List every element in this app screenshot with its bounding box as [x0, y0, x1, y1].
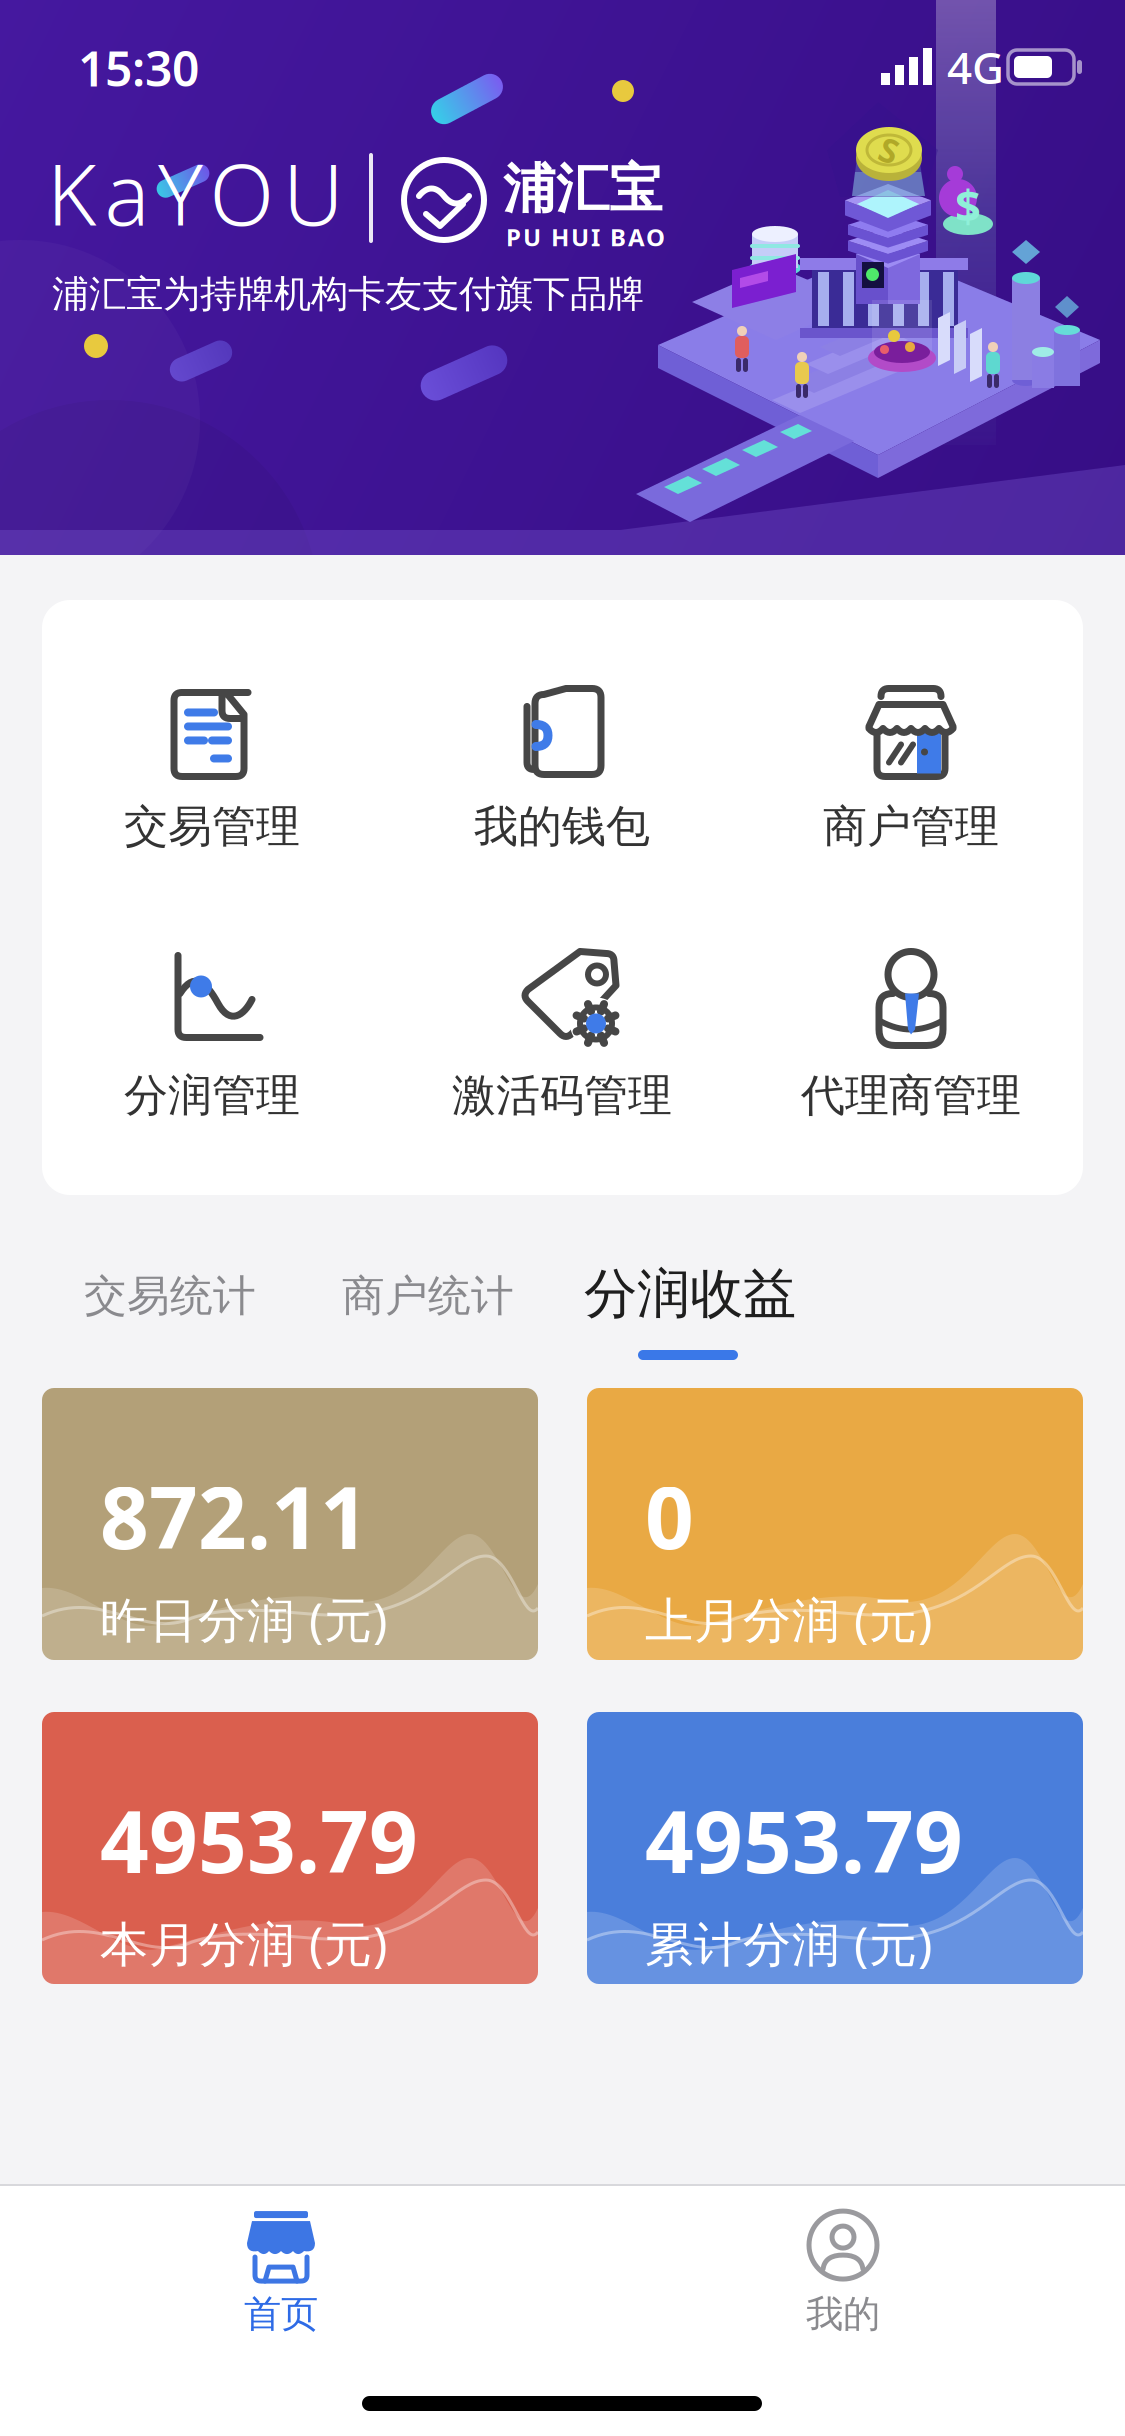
button[interactable]: 我的	[712, 2200, 974, 2348]
button[interactable]: 商户统计	[318, 1264, 538, 1328]
button[interactable]: 商户管理	[746, 674, 1076, 854]
staticText: 交易统计	[84, 1270, 256, 1322]
staticText: 15:30	[78, 36, 199, 100]
staticText: 代理商管理	[801, 1068, 1021, 1122]
staticText: 商户统计	[342, 1270, 514, 1322]
staticText: $	[955, 175, 981, 235]
button[interactable]: 激活码管理	[397, 942, 727, 1122]
staticText: 首页	[244, 2291, 318, 2337]
staticText: 激活码管理	[452, 1068, 672, 1122]
staticText: 872.11	[100, 1459, 369, 1573]
button[interactable]: 首页	[150, 2200, 412, 2348]
staticText: 分润收益	[584, 1261, 796, 1327]
staticText: 浦汇宝为持牌机构卡友支付旗下品牌	[52, 271, 644, 317]
staticText: 昨日分润 (元)	[100, 1587, 387, 1651]
staticText: 上月分润 (元)	[645, 1587, 932, 1651]
staticText: 浦汇宝	[503, 156, 662, 222]
staticText: 累计分润 (元)	[645, 1911, 932, 1975]
staticText: 4G	[947, 38, 1004, 96]
button[interactable]: 分润管理	[47, 942, 377, 1122]
staticText: 交易管理	[124, 799, 300, 853]
staticText: 本月分润 (元)	[100, 1911, 387, 1975]
staticText: 4953.79	[645, 1783, 963, 1897]
staticText: 我的钱包	[474, 799, 650, 853]
staticText: S	[880, 128, 898, 172]
staticText: PU HUI BAO	[506, 221, 665, 253]
staticText: 我的	[806, 2291, 880, 2337]
staticText: 4953.79	[100, 1783, 418, 1897]
button[interactable]: 代理商管理	[746, 942, 1076, 1122]
staticText: KaYOU	[47, 137, 344, 249]
button[interactable]: 我的钱包	[397, 674, 727, 854]
staticText: 分润管理	[124, 1068, 300, 1122]
staticText: 商户管理	[823, 799, 999, 853]
button[interactable]: 交易管理	[47, 674, 377, 854]
button[interactable]: 交易统计	[60, 1264, 280, 1328]
staticText: 0	[645, 1459, 694, 1573]
button[interactable]: 分润收益	[570, 1260, 810, 1328]
